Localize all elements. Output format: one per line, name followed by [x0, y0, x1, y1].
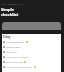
staticText: Morning routine: [6, 40, 25, 43]
button[interactable]: Write daily summary: [2, 54, 61, 59]
staticText: Today: [3, 35, 11, 38]
staticText: Review notes: [6, 45, 21, 48]
staticText: Write daily summary: [6, 55, 30, 58]
staticText: Call team: [6, 50, 17, 53]
button[interactable]: Review notes: [2, 44, 61, 49]
button[interactable]: Read a chapter of book: [2, 64, 61, 69]
staticText: Simple: [1, 7, 15, 12]
button[interactable]: Call team: [2, 49, 61, 54]
staticText: Your complete day in: [1, 3, 24, 6]
button[interactable]: Morning routine: [2, 39, 61, 44]
staticText: Read a chapter of book: [6, 65, 33, 68]
staticText: Plan tomorrow: [6, 60, 23, 63]
staticText: checklist: [1, 12, 19, 17]
button[interactable]: Plan tomorrow: [2, 59, 61, 64]
